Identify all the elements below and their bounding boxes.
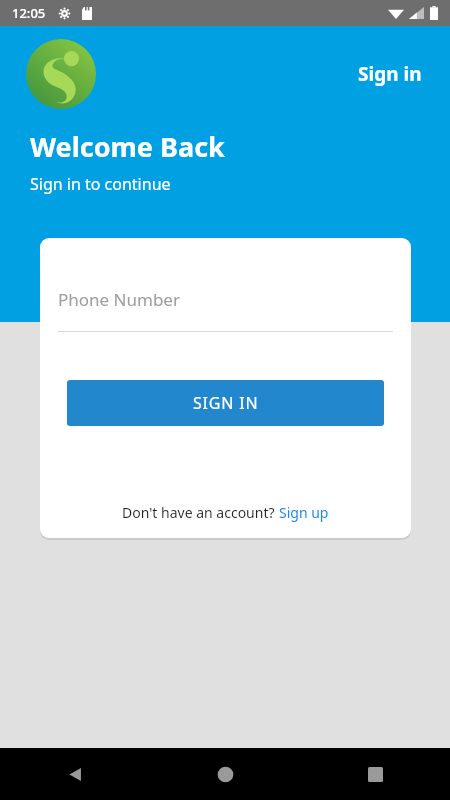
staticText: Sign up (279, 503, 329, 522)
other: App logo (26, 39, 96, 109)
button[interactable]: Recent apps (300, 748, 450, 800)
staticText: 12:05 (12, 4, 46, 22)
staticText: SIGN IN (193, 392, 259, 414)
button[interactable]: Sign in (352, 55, 428, 93)
button[interactable]: Back (0, 748, 150, 800)
button[interactable]: SIGN IN (67, 380, 384, 426)
staticText: Phone Number (58, 288, 180, 311)
staticText: Welcome Back (30, 128, 225, 165)
button[interactable]: Sign up (279, 503, 329, 522)
button[interactable]: Phone Number (58, 288, 393, 311)
staticText: Sign in to continue (30, 173, 171, 195)
staticText: Sign in (358, 61, 422, 87)
button[interactable]: Home (150, 748, 300, 800)
staticText: Don't have an account? (122, 503, 279, 522)
